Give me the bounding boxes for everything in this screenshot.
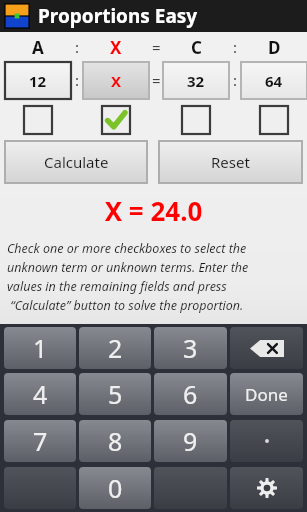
button[interactable]: Decimal point [230, 420, 303, 462]
staticText: Done [245, 383, 288, 406]
staticText: C [191, 36, 202, 58]
staticText: 1 [33, 331, 48, 365]
button[interactable]: 2 [79, 327, 151, 369]
staticText: A [32, 36, 44, 58]
button[interactable]: 7 [4, 420, 76, 462]
staticText: Check one or more checkboxes to select t… [7, 240, 302, 257]
staticText: X [110, 36, 122, 58]
button[interactable]: 64 [241, 62, 307, 99]
staticText: X [111, 71, 122, 91]
staticText: 5 [108, 377, 123, 411]
button[interactable]: 0 [79, 467, 151, 509]
button[interactable]: 6 [154, 373, 227, 415]
staticText: : [233, 70, 238, 90]
button[interactable]: Reset [159, 141, 302, 183]
button[interactable]: Unknown term [241, 105, 307, 135]
staticText: 4 [33, 377, 48, 411]
button[interactable]: Done [230, 373, 303, 415]
button[interactable]: X [83, 62, 149, 99]
staticText: 6 [183, 377, 198, 411]
button[interactable]: Unknown term [5, 105, 71, 135]
staticText: 0 [108, 471, 123, 505]
button[interactable]: 4 [4, 373, 76, 415]
staticText: 12 [29, 71, 47, 91]
staticText: : [233, 37, 238, 57]
staticText: “Calculate” button to solve the proporti… [7, 297, 302, 314]
button[interactable]: 1 [4, 327, 76, 369]
button[interactable]: Settings [230, 467, 303, 509]
staticText: 2 [108, 331, 123, 365]
staticText: 64 [265, 71, 283, 91]
staticText: Reset [211, 152, 250, 172]
staticText: X = 24.0 [0, 193, 307, 228]
button[interactable]: Checked unknown term [83, 105, 149, 135]
staticText: 9 [183, 424, 198, 458]
staticText: Proportions Easy [38, 3, 198, 29]
button[interactable]: 12 [5, 62, 71, 99]
button[interactable]: Unknown term [163, 105, 229, 135]
button[interactable]: 5 [79, 373, 151, 415]
staticText: Calculate [44, 152, 109, 172]
button[interactable]: 9 [154, 420, 227, 462]
staticText: = [152, 70, 161, 90]
button[interactable]: Blank key [4, 467, 76, 509]
button[interactable]: Blank key [154, 467, 227, 509]
button[interactable]: 8 [79, 420, 151, 462]
staticText: : [75, 70, 80, 90]
staticText: D [268, 36, 281, 58]
staticText: unknown term or unknown terms. Enter the [7, 259, 302, 276]
staticText: 7 [33, 424, 48, 458]
button[interactable]: Backspace [230, 327, 303, 369]
button[interactable]: 32 [163, 62, 229, 99]
staticText: : [75, 37, 80, 57]
button[interactable]: Calculate [5, 141, 147, 183]
staticText: 32 [187, 71, 205, 91]
staticText: 8 [108, 424, 123, 458]
staticText: 3 [183, 331, 198, 365]
staticText: values in the remaining fields and press [7, 278, 302, 295]
button[interactable]: 3 [154, 327, 227, 369]
staticText: = [152, 37, 161, 57]
